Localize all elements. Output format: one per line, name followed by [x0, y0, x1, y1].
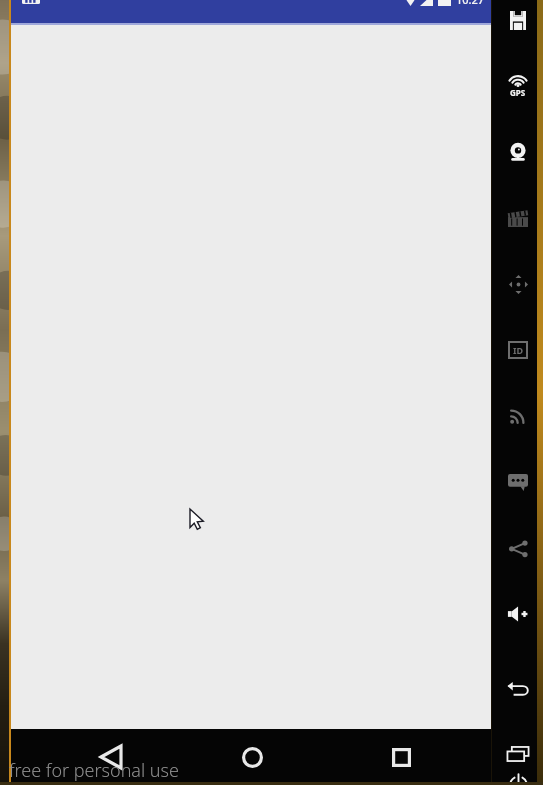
button[interactable]: Back: [89, 735, 133, 779]
staticText: free for personal use: [9, 758, 179, 783]
button[interactable]: GPS: [496, 73, 540, 99]
staticText: 10:27: [456, 0, 485, 7]
button[interactable]: Signal: [496, 403, 540, 429]
button[interactable]: Capture screenshot: [496, 7, 540, 33]
button[interactable]: Messages: [496, 469, 540, 495]
button[interactable]: Home: [230, 735, 274, 779]
button[interactable]: Volume up: [496, 601, 540, 627]
button[interactable]: Recent apps: [379, 735, 423, 779]
staticText: ID: [513, 344, 524, 356]
button[interactable]: Device ID: [496, 337, 540, 363]
button[interactable]: Move: [496, 271, 540, 297]
staticText: GPS: [510, 87, 526, 98]
button[interactable]: Record video: [496, 139, 540, 165]
button[interactable]: Share: [496, 535, 540, 561]
button[interactable]: Back: [496, 675, 540, 701]
button[interactable]: Recent apps: [496, 741, 540, 767]
button[interactable]: Movie: [496, 205, 540, 231]
